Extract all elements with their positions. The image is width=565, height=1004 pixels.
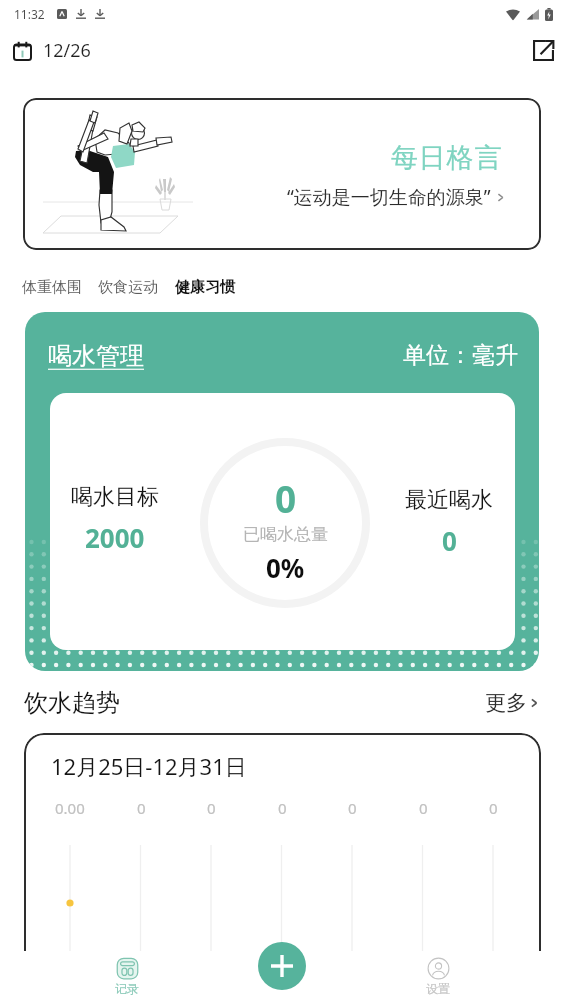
- button[interactable]: Open in new: [523, 30, 563, 70]
- staticText: 0.00: [55, 798, 85, 818]
- staticText: 12月25日-12月31日: [51, 751, 247, 781]
- staticText: 设置: [426, 981, 450, 996]
- staticText: 0: [489, 798, 498, 818]
- staticText: 0: [275, 473, 297, 523]
- staticText: 0: [348, 798, 357, 818]
- staticText: 喝水目标: [71, 483, 159, 511]
- staticText: 饮水趋势: [24, 688, 120, 718]
- staticText: 2000: [85, 520, 145, 555]
- button[interactable]: 喝水管理: [25, 312, 539, 671]
- staticText: 0: [207, 798, 216, 818]
- button[interactable]: 体重体围: [22, 278, 82, 297]
- button[interactable]: 12/26: [11, 32, 93, 69]
- button[interactable]: 更多: [481, 686, 542, 720]
- button[interactable]: 每日格言: [23, 98, 541, 250]
- staticText: 喝水管理: [48, 341, 144, 371]
- staticText: 记录: [115, 981, 139, 996]
- staticText: 0: [419, 798, 428, 818]
- staticText: “运动是一切生命的源泉”: [287, 184, 491, 210]
- staticText: 0: [137, 798, 146, 818]
- staticText: 0%: [266, 550, 305, 585]
- button[interactable]: 健康习惯: [175, 278, 235, 297]
- button[interactable]: 记录: [87, 951, 167, 1004]
- button[interactable]: 饮食运动: [98, 278, 158, 297]
- staticText: 11:32: [14, 6, 45, 22]
- staticText: 已喝水总量: [243, 524, 328, 545]
- staticText: 最近喝水: [405, 486, 493, 514]
- staticText: 12/26: [43, 38, 91, 63]
- button[interactable]: 设置: [398, 951, 478, 1004]
- staticText: 更多: [485, 690, 527, 716]
- staticText: 单位：毫升: [403, 341, 518, 370]
- staticText: 0: [442, 523, 457, 558]
- button[interactable]: Add: [258, 942, 306, 990]
- staticText: 0: [278, 798, 287, 818]
- staticText: 每日格言: [391, 141, 503, 175]
